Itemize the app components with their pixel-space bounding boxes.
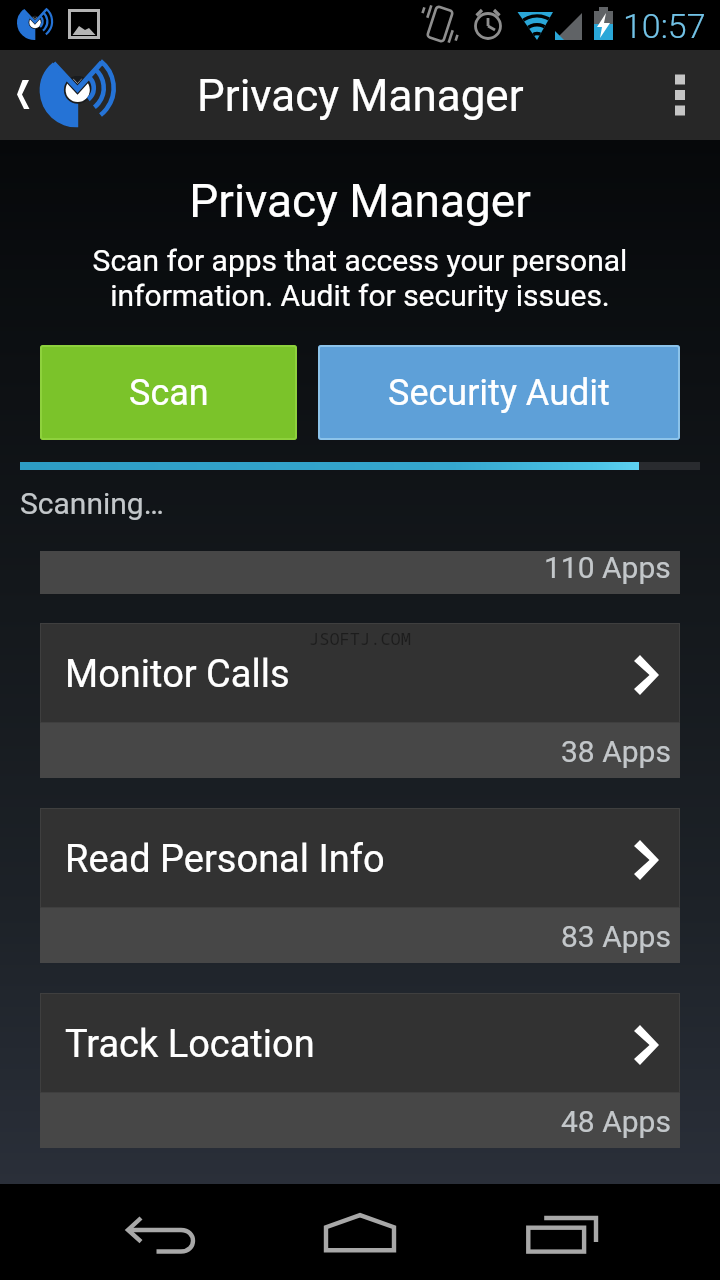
button[interactable]: Track Location: [40, 993, 680, 1093]
button[interactable]: 48 Apps: [40, 1093, 680, 1148]
staticText: JSOFTJ.COM: [309, 627, 411, 650]
staticText: Privacy Manager: [0, 174, 720, 228]
button[interactable]: Back: [100, 1184, 220, 1280]
button[interactable]: Security Audit: [318, 345, 680, 440]
button[interactable]: 110 Apps: [40, 551, 680, 594]
staticText: Scanning…: [20, 486, 164, 521]
staticText: Track Location: [65, 1022, 315, 1067]
button[interactable]: 38 Apps: [40, 723, 680, 778]
button[interactable]: More options: [648, 50, 720, 140]
staticText: 110 Apps: [544, 550, 671, 585]
button[interactable]: Recent apps: [500, 1184, 620, 1280]
button[interactable]: Home: [300, 1184, 420, 1280]
staticText: 83 Apps: [561, 919, 671, 954]
staticText: Read Personal Info: [65, 837, 385, 882]
staticText: 38 Apps: [561, 734, 671, 769]
staticText: Scan: [129, 372, 209, 414]
staticText: Monitor Calls: [65, 652, 290, 697]
staticText: Security Audit: [388, 372, 610, 414]
staticText: Scan for apps that access your personal …: [0, 243, 720, 313]
staticText: Privacy Manager: [197, 70, 524, 122]
staticText: 10:57: [623, 6, 706, 46]
button[interactable]: 83 Apps: [40, 908, 680, 963]
button[interactable]: JSOFTJ.COM: [40, 623, 680, 723]
button[interactable]: Scan: [40, 345, 297, 440]
button[interactable]: Read Personal Info: [40, 808, 680, 908]
button[interactable]: Navigate up: [0, 50, 125, 140]
staticText: 48 Apps: [561, 1104, 671, 1139]
